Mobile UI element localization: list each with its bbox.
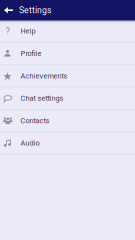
staticText: Settings bbox=[19, 5, 51, 15]
button[interactable]: Back bbox=[0, 0, 19, 20]
staticText: Contacts bbox=[21, 116, 50, 125]
staticText: Help bbox=[21, 27, 36, 35]
button[interactable]: Chat settings bbox=[0, 88, 135, 110]
staticText: Chat settings bbox=[21, 94, 64, 103]
button[interactable]: ? bbox=[0, 20, 135, 43]
staticText: Audio bbox=[21, 139, 40, 147]
staticText: Profile bbox=[21, 49, 42, 58]
button[interactable]: Audio bbox=[0, 132, 135, 155]
staticText: ? bbox=[6, 26, 10, 36]
button[interactable]: Contacts bbox=[0, 110, 135, 132]
button[interactable]: Achievements bbox=[0, 65, 135, 88]
button[interactable]: Profile bbox=[0, 43, 135, 65]
staticText: Achievements bbox=[21, 72, 68, 80]
